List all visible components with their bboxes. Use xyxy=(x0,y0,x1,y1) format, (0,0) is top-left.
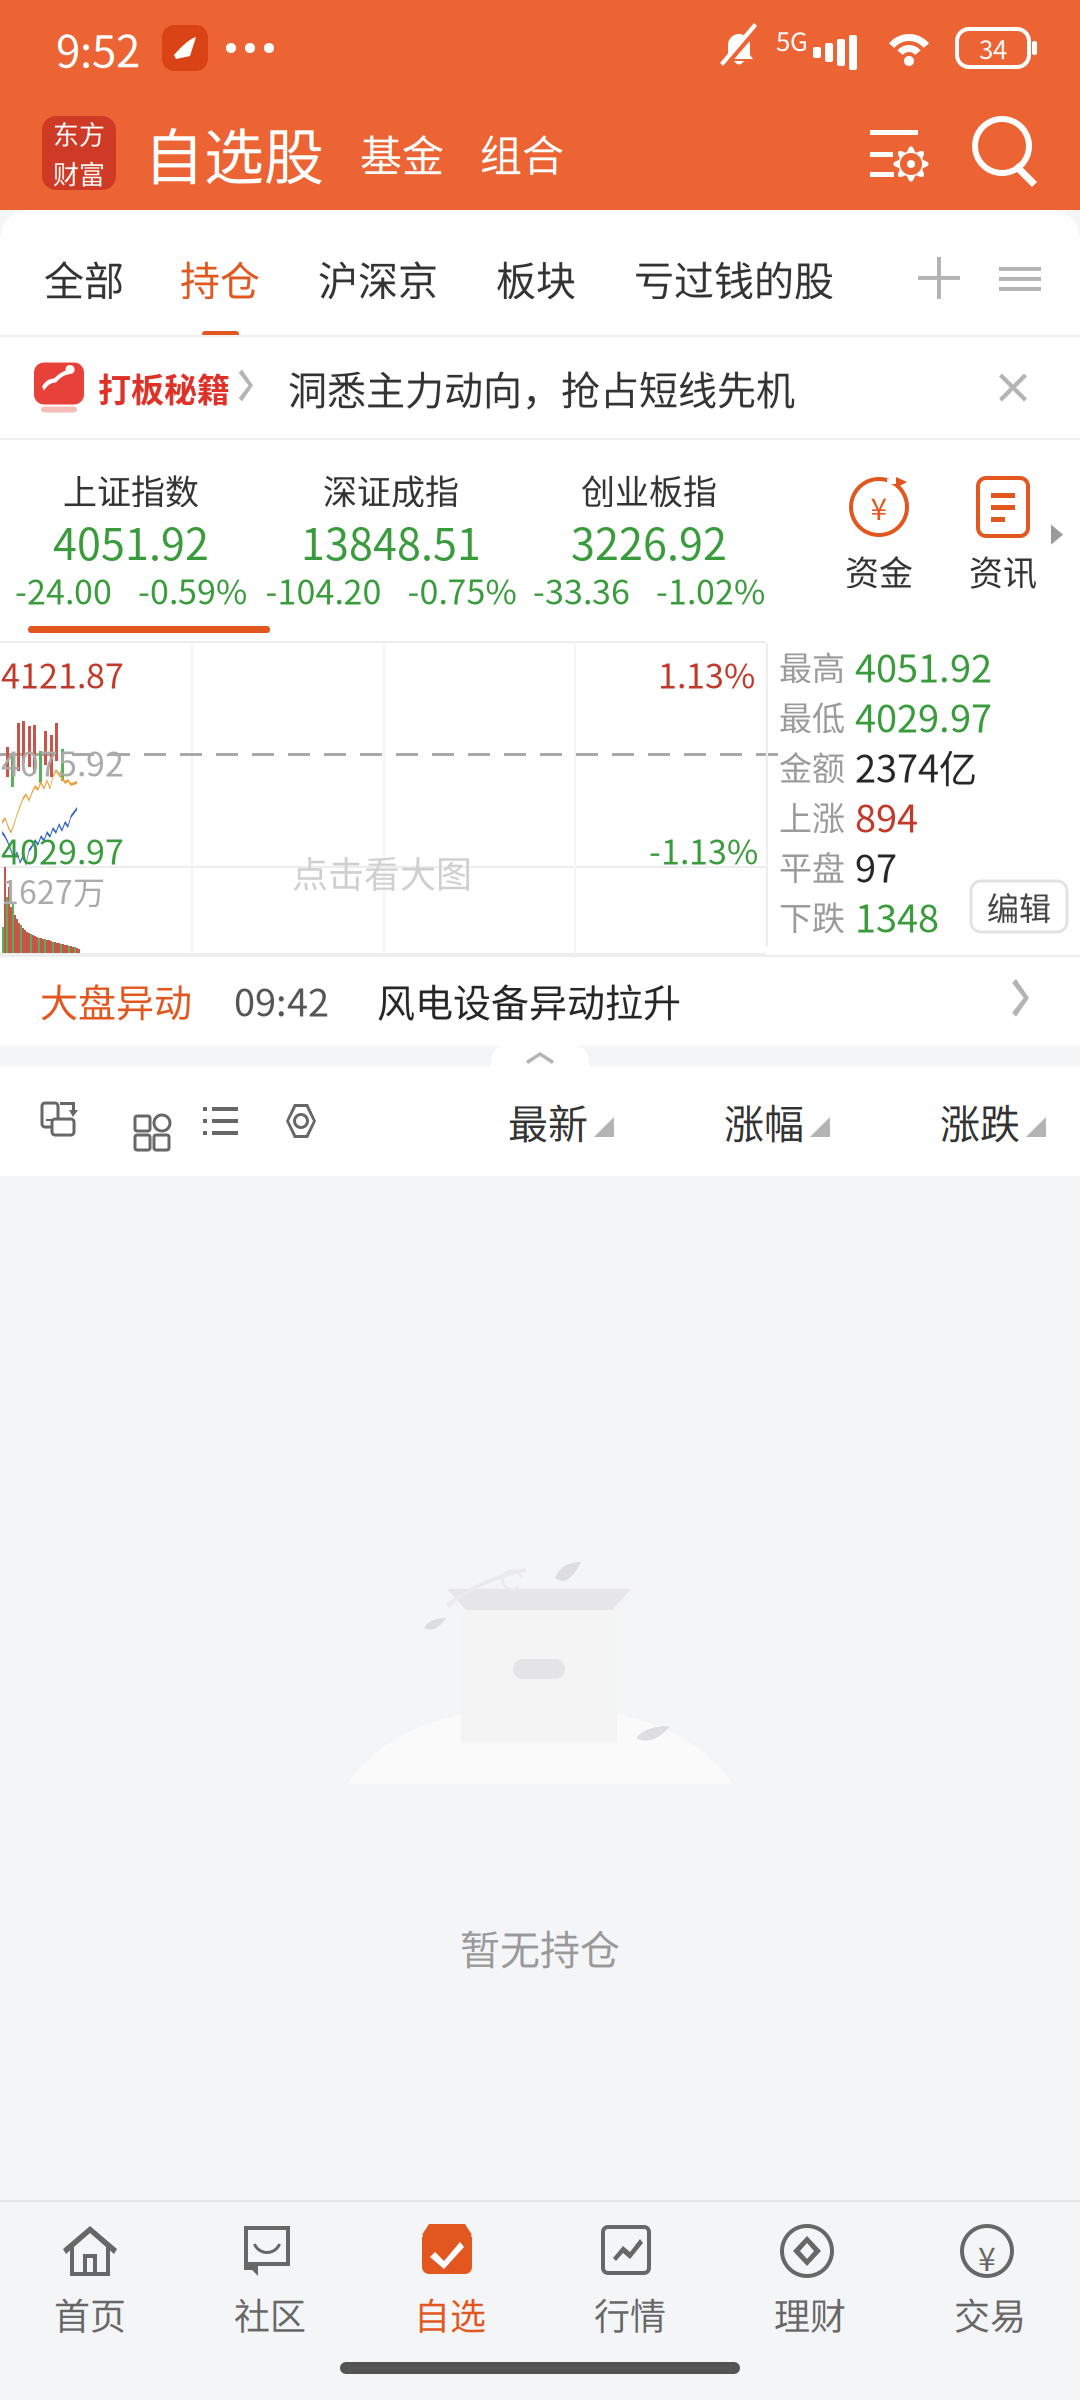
staticText: 1.13% xyxy=(658,649,755,698)
button[interactable]: 涨幅 xyxy=(724,1092,832,1150)
staticText: 金额 xyxy=(779,742,845,790)
staticText: 1627万 xyxy=(1,867,105,913)
staticText: 交易 xyxy=(954,2288,1026,2340)
staticText: 13848.51 xyxy=(301,510,481,572)
button[interactable]: 上证指数 xyxy=(0,440,262,635)
staticText: 4029.97 xyxy=(855,688,992,743)
staticText: 1348 xyxy=(855,888,939,943)
staticText: -33.36 xyxy=(533,565,630,614)
staticText: 东方 xyxy=(53,114,105,152)
button[interactable]: 板块 xyxy=(496,249,576,307)
staticText: 最新 xyxy=(508,1092,588,1150)
staticText: 洞悉主力动向，抢占短线先机 xyxy=(288,359,795,416)
staticText: 3226.92 xyxy=(571,510,727,572)
staticText: 4029.97 xyxy=(1,825,124,874)
button[interactable]: 沪深京 xyxy=(318,249,438,307)
staticText: 暂无持仓 xyxy=(460,1918,620,1976)
staticText: 5G xyxy=(776,21,808,59)
button[interactable]: 打板秘籍 xyxy=(0,337,1080,438)
staticText: 上涨 xyxy=(779,792,845,840)
staticText: 资讯 xyxy=(969,546,1037,595)
button[interactable]: 组合 xyxy=(480,123,564,183)
staticText: 创业板指 xyxy=(581,465,717,514)
staticText: 社区 xyxy=(234,2288,306,2340)
staticText: 4051.92 xyxy=(53,510,209,572)
button[interactable]: Settings xyxy=(852,110,938,196)
staticText: 下跌 xyxy=(779,892,845,940)
staticText: 全部 xyxy=(44,249,124,307)
staticText: 4051.92 xyxy=(855,638,992,693)
staticText: 上证指数 xyxy=(63,465,199,514)
button[interactable]: 亏过钱的股 xyxy=(634,249,834,307)
staticText: 34 xyxy=(979,29,1007,67)
staticText: 自选股 xyxy=(144,110,324,196)
staticText: 最低 xyxy=(779,692,845,740)
staticText: 风电设备异动拉升 xyxy=(377,972,681,1027)
staticText: 平盘 xyxy=(779,842,845,890)
button[interactable]: Grid view xyxy=(121,1101,161,1141)
staticText: 持仓 xyxy=(180,249,260,307)
button[interactable]: List view xyxy=(201,1101,241,1141)
staticText: 点击看大图 xyxy=(292,846,472,898)
button[interactable]: 首页 xyxy=(0,2224,180,2340)
button[interactable]: 涨跌 xyxy=(940,1092,1048,1150)
button[interactable]: Switch layout xyxy=(41,1101,81,1141)
staticText: 2374亿 xyxy=(855,738,977,793)
staticText: -1.13% xyxy=(649,825,758,874)
button[interactable]: 最新 xyxy=(508,1092,616,1150)
staticText: 4075.92 xyxy=(1,737,124,786)
button[interactable]: 行情 xyxy=(540,2224,720,2340)
staticText: 894 xyxy=(855,788,918,843)
staticText: 资金 xyxy=(845,546,913,595)
button[interactable]: 创业板指 xyxy=(520,440,778,635)
staticText: 09:42 xyxy=(234,972,329,1027)
staticText: 行情 xyxy=(594,2288,666,2340)
staticText: ¥ xyxy=(870,485,887,529)
button[interactable]: 自选 xyxy=(360,2224,540,2340)
staticText: 深证成指 xyxy=(323,465,459,514)
button[interactable]: 资讯 xyxy=(969,476,1037,595)
button[interactable]: Manage groups xyxy=(996,254,1044,302)
button[interactable]: Search xyxy=(964,110,1050,196)
button[interactable]: ¥ xyxy=(900,2224,1080,2340)
staticText: 97 xyxy=(855,838,897,893)
staticText: 最高 xyxy=(779,642,845,690)
button[interactable]: 编辑 xyxy=(971,881,1067,932)
button[interactable]: 社区 xyxy=(180,2224,360,2340)
button[interactable]: 基金 xyxy=(360,123,444,183)
staticText: 板块 xyxy=(496,249,576,307)
staticText: 涨跌 xyxy=(940,1092,1020,1150)
staticText: 涨幅 xyxy=(724,1092,804,1150)
staticText: ¥ xyxy=(978,2234,996,2280)
staticText: 沪深京 xyxy=(318,249,438,307)
button[interactable]: 深证成指 xyxy=(262,440,520,635)
button[interactable]: 理财 xyxy=(720,2224,900,2340)
staticText: -24.00 xyxy=(15,565,112,614)
staticText: -0.59% xyxy=(138,565,247,614)
staticText: 首页 xyxy=(54,2288,126,2340)
button[interactable]: 自选股 xyxy=(144,110,324,196)
staticText: 编辑 xyxy=(987,883,1051,930)
button[interactable]: Add group xyxy=(912,251,966,305)
staticText: 财富 xyxy=(53,154,105,192)
staticText: 9:52 xyxy=(56,16,140,80)
staticText: -0.75% xyxy=(407,565,516,614)
button[interactable]: 大盘异动 xyxy=(0,957,1080,1043)
staticText: 4121.87 xyxy=(1,649,124,698)
staticText: 亏过钱的股 xyxy=(634,249,834,307)
staticText: 打板秘籍 xyxy=(98,364,230,411)
staticText: -1.02% xyxy=(656,565,765,614)
button[interactable]: ¥ xyxy=(845,476,913,595)
staticText: 组合 xyxy=(480,123,564,183)
button[interactable]: Display settings xyxy=(281,1101,321,1141)
staticText: 大盘异动 xyxy=(40,972,192,1027)
staticText: 基金 xyxy=(360,123,444,183)
staticText: 理财 xyxy=(774,2288,846,2340)
staticText: -104.20 xyxy=(265,565,381,614)
button[interactable]: 持仓 xyxy=(180,249,260,307)
staticText: 自选 xyxy=(414,2288,486,2340)
button[interactable]: 全部 xyxy=(44,249,124,307)
